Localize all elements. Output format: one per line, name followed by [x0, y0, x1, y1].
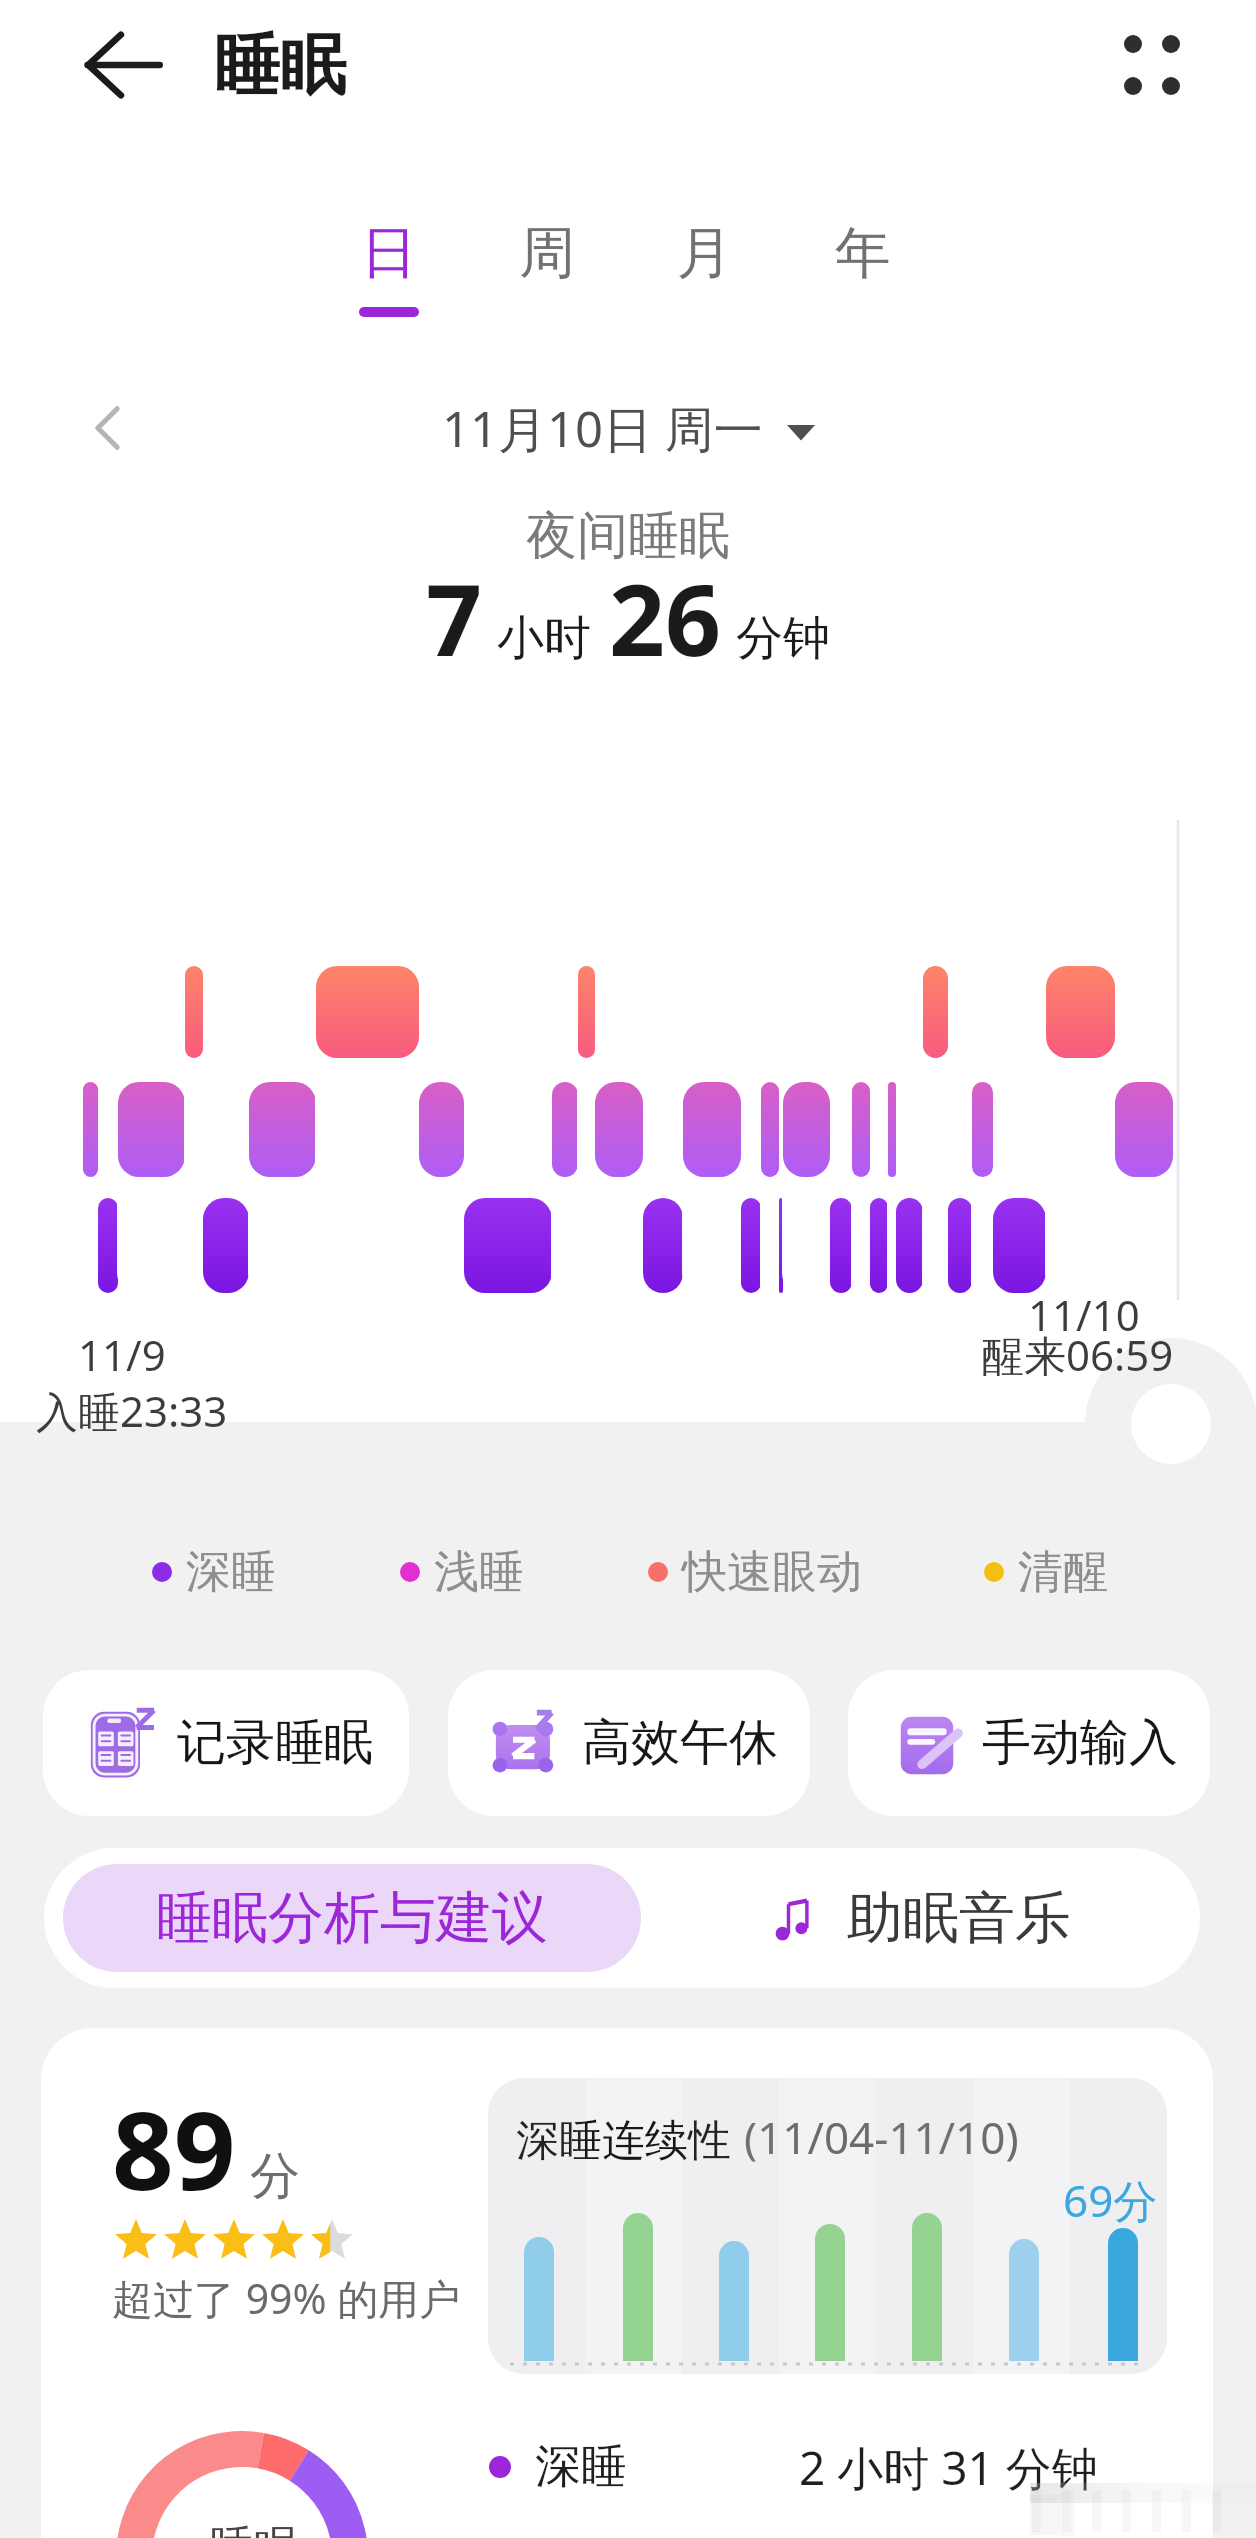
button[interactable]: 睡眠分析与建议 [63, 1864, 641, 1972]
staticText: 月 [677, 218, 733, 289]
button[interactable]: 89 [41, 2028, 1213, 2538]
staticText: 年 [835, 218, 891, 289]
button[interactable]: 高效午休 [448, 1670, 810, 1816]
staticText: 高效午休 [582, 1712, 778, 1774]
staticText: 深睡 [186, 1544, 276, 1601]
staticText: 深睡连续性 [516, 2114, 731, 2168]
button[interactable]: 年 [807, 218, 919, 317]
button[interactable]: 清醒 [984, 1537, 1108, 1607]
button[interactable]: 深睡 [152, 1537, 276, 1607]
staticText: 浅睡 [434, 1544, 524, 1601]
staticText: 助眠音乐 [847, 1883, 1071, 1954]
button[interactable]: 浅睡 [400, 1537, 524, 1607]
staticText: 睡眠 [210, 2520, 298, 2538]
staticText: 26 [609, 551, 722, 684]
staticText: 快速眼动 [682, 1544, 862, 1601]
button[interactable]: 手动输入 [848, 1670, 1210, 1816]
button[interactable]: 日 [333, 218, 445, 317]
staticText: 睡眠 [214, 24, 346, 107]
button[interactable]: Previous day [68, 388, 148, 468]
staticText: 11/9 [78, 1326, 166, 1383]
staticText: 69分 [1063, 2170, 1158, 2230]
button[interactable]: 快速眼动 [648, 1537, 862, 1607]
staticText: 睡眠分析与建议 [156, 1883, 548, 1954]
staticText: 小时 [497, 609, 591, 668]
staticText: 11月10日 周一 [442, 395, 763, 462]
button[interactable]: 月 [649, 218, 761, 317]
staticText: 夜间睡眠 [526, 504, 730, 568]
staticText: 手动输入 [982, 1712, 1178, 1774]
button[interactable]: Add sleep record [1131, 1384, 1211, 1464]
button[interactable]: 记录睡眠 [43, 1670, 409, 1816]
staticText: 深睡 [535, 2438, 627, 2496]
staticText: 清醒 [1018, 1544, 1108, 1601]
staticText: 周 [519, 218, 575, 289]
staticText: 日 [361, 218, 417, 289]
staticText: 11/10 [1028, 1286, 1140, 1343]
staticText: 分钟 [736, 609, 830, 668]
staticText: 7 [426, 551, 483, 684]
button[interactable]: 11月10日 周一 [442, 395, 815, 462]
staticText: 入睡23:33 [36, 1382, 228, 1439]
button[interactable]: 周 [491, 218, 603, 317]
button[interactable]: 助眠音乐 [641, 1848, 1200, 1988]
staticText: (11/04-11/10) [744, 2107, 1019, 2167]
staticText: 记录睡眠 [177, 1712, 373, 1774]
button[interactable]: Back [76, 17, 172, 113]
staticText: 89 [112, 2075, 236, 2222]
staticText: 2 小时 31 分钟 [799, 2436, 1098, 2499]
button[interactable]: More options [1104, 17, 1200, 113]
staticText: 超过了 99% 的用户 [112, 2270, 461, 2326]
staticText: 分 [250, 2145, 300, 2208]
staticText: 醒来06:59 [982, 1326, 1174, 1383]
